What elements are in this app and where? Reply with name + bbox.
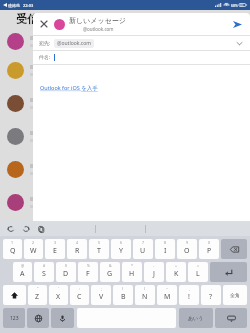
staticText: F — [86, 269, 90, 279]
button[interactable]: 貼り付け — [35, 223, 46, 234]
button[interactable]: , — [179, 285, 199, 305]
staticText: X — [56, 292, 61, 302]
button[interactable]: ( — [113, 285, 133, 305]
button[interactable]: 0 — [199, 239, 219, 259]
button[interactable]: & — [100, 262, 120, 282]
button[interactable]: 宛先: — [33, 36, 250, 50]
button[interactable]: . — [201, 285, 221, 305]
staticText: ' — [58, 286, 59, 291]
button[interactable]: * — [122, 262, 142, 282]
staticText: A — [20, 269, 25, 279]
button[interactable]: Outlook for iOS を入手 — [33, 65, 250, 221]
button[interactable]: 8 — [155, 239, 175, 259]
button[interactable]: 件名: — [33, 51, 250, 64]
button[interactable]: 音声入力 — [51, 308, 74, 328]
button[interactable] — [0, 54, 250, 87]
button[interactable]: + — [166, 262, 186, 282]
staticText: 宛先: — [39, 40, 51, 47]
button[interactable]: アカウント — [54, 19, 65, 30]
button[interactable]: 送信 — [229, 16, 245, 32]
button[interactable]: 閉じる — [38, 18, 50, 30]
button[interactable]: : — [70, 285, 89, 305]
button[interactable]: % — [78, 262, 98, 282]
staticText: U — [140, 246, 146, 256]
button[interactable]: キーボードを閉じる — [215, 308, 247, 328]
button[interactable]: = — [188, 262, 208, 282]
button[interactable] — [0, 120, 250, 153]
staticText: P — [207, 246, 212, 256]
button[interactable]: 4 — [67, 239, 87, 259]
button[interactable]: ' — [49, 285, 68, 305]
staticText: 受信トレイ — [16, 12, 72, 26]
staticText: 7 — [142, 240, 145, 245]
button[interactable] — [0, 87, 250, 120]
button[interactable]: 6 — [111, 239, 131, 259]
button[interactable]: ~ — [157, 285, 177, 305]
staticText: N — [142, 292, 148, 302]
staticText: S — [42, 269, 46, 279]
staticText: 4 — [76, 240, 79, 245]
staticText: 連絡先 — [8, 3, 20, 8]
button[interactable]: - — [144, 262, 164, 282]
staticText: D — [63, 269, 69, 279]
button[interactable]: 5 — [89, 239, 109, 259]
staticText: G — [107, 269, 113, 279]
button[interactable]: 9 — [177, 239, 197, 259]
staticText: 5 — [98, 240, 101, 245]
button[interactable] — [0, 28, 250, 54]
button[interactable]: 7 — [133, 239, 153, 259]
staticText: . — [211, 286, 212, 291]
staticText: W — [30, 246, 37, 256]
staticText: - — [153, 263, 155, 268]
staticText: Y — [119, 246, 123, 256]
button[interactable]: シフト — [3, 285, 26, 305]
button[interactable]: ; — [91, 285, 111, 305]
button[interactable]: あいう — [179, 308, 213, 328]
button[interactable]: 削除 — [221, 239, 247, 259]
button[interactable]: 元に戻す — [5, 223, 16, 234]
staticText: V — [99, 292, 104, 302]
staticText: 件名: — [39, 54, 51, 61]
staticText: Z — [35, 292, 40, 302]
button[interactable] — [0, 186, 250, 219]
button[interactable]: 2 — [24, 239, 43, 259]
staticText: 8 — [164, 240, 167, 245]
staticText: T — [97, 246, 101, 256]
staticText: M — [164, 292, 171, 302]
staticText: 22:03 — [23, 3, 34, 8]
button[interactable]: 3 — [45, 239, 65, 259]
staticText: : — [79, 286, 80, 291]
button[interactable]: 言語 — [27, 308, 49, 328]
button[interactable]: 1 — [3, 239, 22, 259]
staticText: = — [197, 263, 200, 268]
staticText: J — [153, 269, 155, 279]
staticText: @ — [21, 263, 25, 268]
button[interactable]: やり直す — [20, 223, 31, 234]
button[interactable]: $ — [56, 262, 76, 282]
staticText: I — [164, 246, 167, 256]
button[interactable]: 展開 — [234, 38, 244, 48]
button[interactable]: # — [34, 262, 54, 282]
button[interactable]: 123 — [3, 308, 25, 328]
button[interactable] — [0, 153, 250, 186]
staticText: O — [184, 246, 190, 256]
button[interactable]: @ — [13, 262, 32, 282]
staticText: ? — [209, 292, 213, 302]
staticText: 9 — [186, 240, 189, 245]
staticText: ( — [122, 286, 124, 291]
button[interactable]: 添付ファイル — [38, 223, 49, 234]
button[interactable]: 改行 — [210, 262, 247, 282]
button[interactable]: 全角 — [223, 285, 247, 305]
staticText: 68% — [231, 3, 238, 8]
staticText: H — [129, 269, 135, 279]
button[interactable]: " — [28, 285, 47, 305]
staticText: @outlook.com — [57, 40, 91, 47]
staticText: " — [37, 286, 39, 291]
staticText: Q — [10, 246, 16, 256]
staticText: C — [77, 292, 82, 302]
button[interactable]: ) — [135, 285, 155, 305]
staticText: $ — [65, 263, 68, 268]
